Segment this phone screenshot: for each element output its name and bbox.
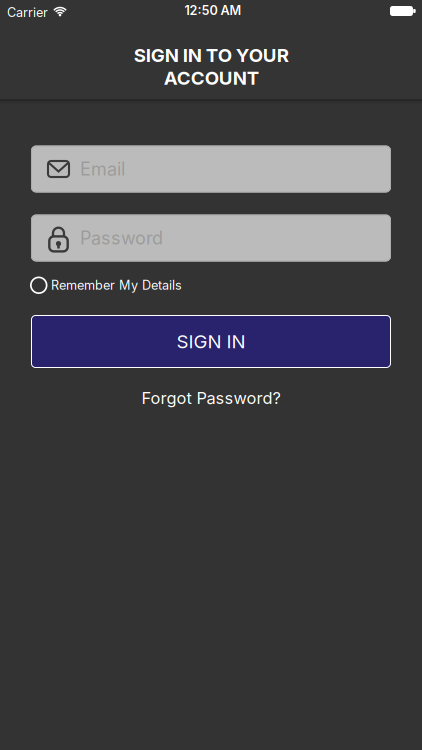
button[interactable]: SIGN IN bbox=[31, 315, 391, 368]
button[interactable]: Password bbox=[31, 214, 391, 261]
button[interactable]: Remember My Details bbox=[0, 276, 422, 294]
staticText: Remember My Details bbox=[51, 278, 182, 293]
button[interactable]: Forgot Password? bbox=[141, 388, 280, 408]
staticText: Email bbox=[80, 158, 125, 180]
staticText: Carrier bbox=[7, 5, 48, 20]
staticText: Forgot Password? bbox=[141, 388, 280, 408]
staticText: Password bbox=[80, 227, 163, 249]
button[interactable]: Email bbox=[31, 145, 391, 192]
staticText: 12:50 AM bbox=[184, 3, 241, 18]
staticText: SIGN IN bbox=[176, 330, 245, 353]
staticText: SIGN IN TO YOUR ACCOUNT bbox=[133, 44, 288, 89]
